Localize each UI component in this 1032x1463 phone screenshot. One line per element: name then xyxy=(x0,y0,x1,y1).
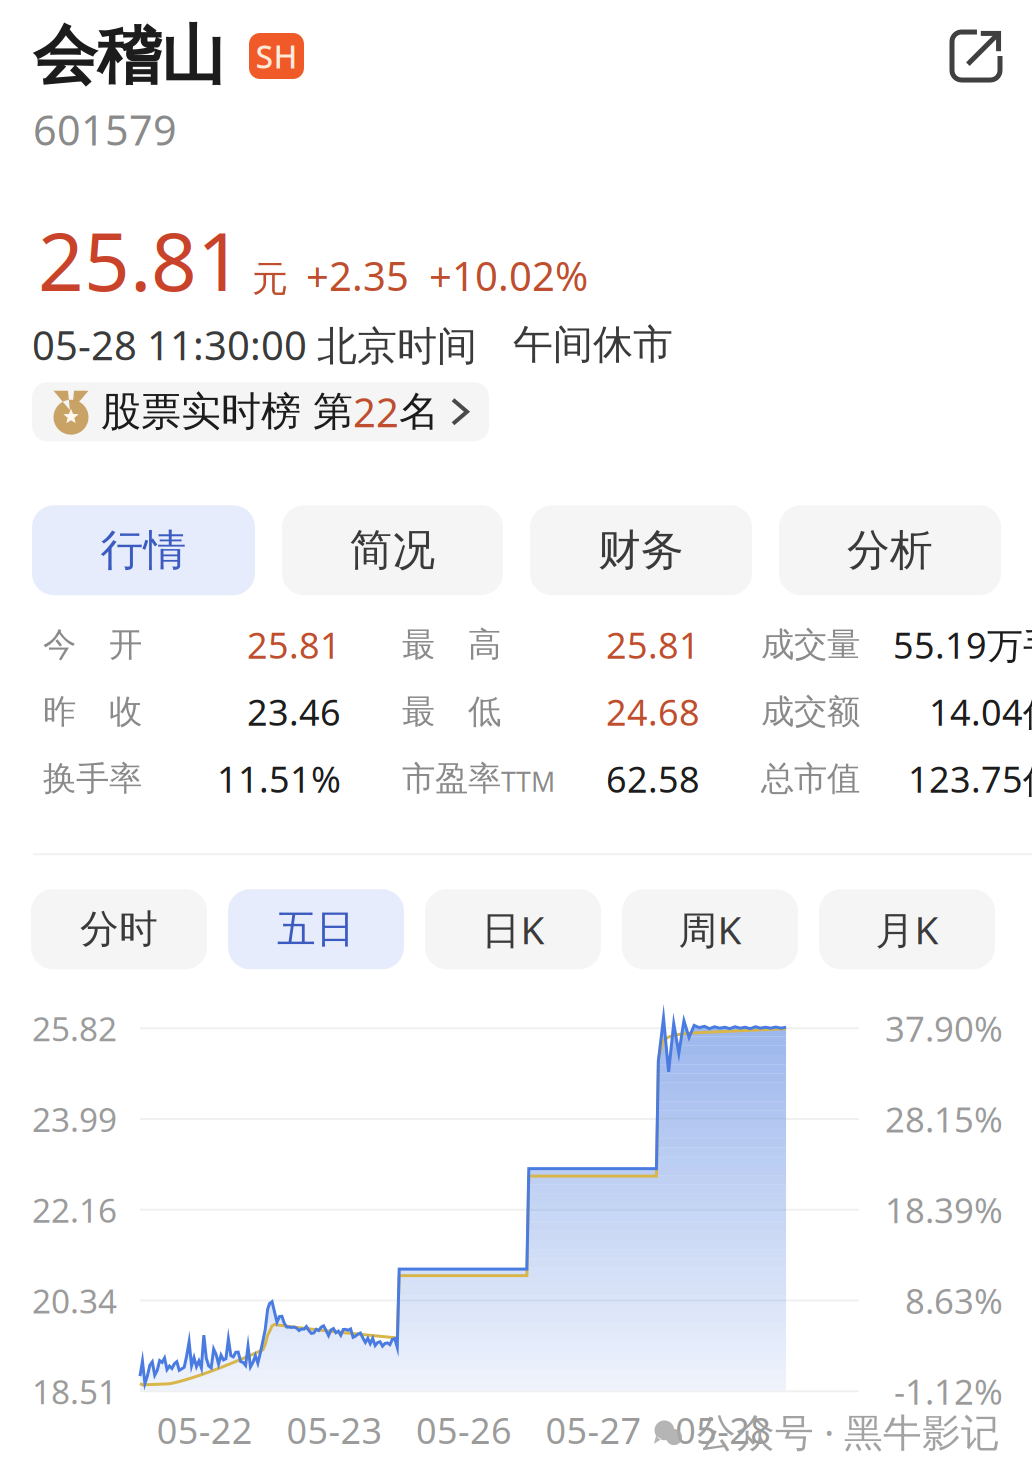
staticText: -1.12% xyxy=(894,1368,1003,1414)
staticText: 今 开 xyxy=(43,624,142,665)
staticText: 分时 xyxy=(80,905,158,953)
staticText: 37.90% xyxy=(885,1005,1003,1051)
staticText: 05-28 11:30:00 北京时间 xyxy=(32,318,477,371)
staticText: 8.63% xyxy=(905,1277,1003,1323)
staticText: 22.16 xyxy=(32,1188,117,1232)
staticText: 日K xyxy=(481,904,544,955)
staticText: 成交量 xyxy=(761,624,860,665)
staticText: 05-26 xyxy=(416,1406,512,1454)
staticText: 25.81 xyxy=(247,621,341,669)
button[interactable]: 简况 xyxy=(282,505,503,595)
staticText: 元 xyxy=(252,257,288,301)
staticText: 分析 xyxy=(847,524,933,576)
staticText: 11.51% xyxy=(217,755,341,803)
staticText: 18.51 xyxy=(32,1369,117,1413)
staticText: +2.35 xyxy=(306,249,409,302)
staticText: 18.39% xyxy=(885,1187,1003,1233)
staticText: 23.46 xyxy=(247,688,341,736)
staticText: 05-22 xyxy=(157,1406,253,1454)
staticText: 名 xyxy=(399,387,439,436)
staticText: 午间休市 xyxy=(513,320,673,369)
button[interactable]: 月K xyxy=(819,889,995,969)
staticText: 股票实时榜 xyxy=(101,387,301,436)
staticText: 公众号 · 黑牛影记 xyxy=(697,1406,1000,1457)
staticText: 25.82 xyxy=(32,1006,117,1050)
button[interactable]: 财务 xyxy=(530,505,752,595)
button[interactable]: 行情 xyxy=(32,505,255,595)
staticText: 周K xyxy=(678,904,741,955)
button[interactable]: 日K xyxy=(425,889,601,969)
staticText: 23.99 xyxy=(32,1097,117,1141)
staticText: 25.81 xyxy=(606,621,700,669)
staticText: 换手率 xyxy=(43,758,142,799)
staticText: TTM xyxy=(501,764,555,799)
staticText: 成交额 xyxy=(761,691,860,732)
staticText: 第 xyxy=(301,387,353,436)
staticText: 市盈率 xyxy=(402,758,501,799)
staticText: 五日 xyxy=(277,905,355,953)
staticText: 601579 xyxy=(33,102,177,157)
button[interactable]: 分析 xyxy=(779,505,1001,595)
staticText: 62.58 xyxy=(606,755,700,803)
staticText: 最 高 xyxy=(402,624,501,665)
staticText: 05-27 xyxy=(546,1406,642,1454)
button[interactable]: 股票实时榜 xyxy=(32,382,489,441)
staticText: 月K xyxy=(875,904,938,955)
staticText: 05-23 xyxy=(286,1406,382,1454)
staticText: 昨 收 xyxy=(43,691,142,732)
staticText: 28.15% xyxy=(885,1096,1003,1142)
button[interactable]: 周K xyxy=(622,889,798,969)
staticText: 最 低 xyxy=(402,691,501,732)
staticText: 25.81 xyxy=(38,207,243,313)
button[interactable]: 分时 xyxy=(31,889,207,969)
staticText: 财务 xyxy=(598,524,684,576)
staticText: 总市值 xyxy=(761,758,860,799)
staticText: 24.68 xyxy=(606,688,700,736)
staticText: 行情 xyxy=(100,524,186,576)
staticText: SH xyxy=(255,35,297,77)
staticText: 14.04亿 xyxy=(929,688,1032,736)
button[interactable]: Share xyxy=(942,22,1010,90)
staticText: 20.34 xyxy=(32,1278,117,1323)
staticText: 会稽山 xyxy=(33,17,225,95)
staticText: +10.02% xyxy=(429,249,588,302)
staticText: 简况 xyxy=(349,524,435,576)
staticText: 05-28 xyxy=(675,1406,771,1454)
staticText: 22 xyxy=(353,385,399,438)
staticText: 55.19万手 xyxy=(893,621,1032,669)
staticText: 123.75亿 xyxy=(908,755,1032,803)
button[interactable]: 五日 xyxy=(228,889,404,969)
